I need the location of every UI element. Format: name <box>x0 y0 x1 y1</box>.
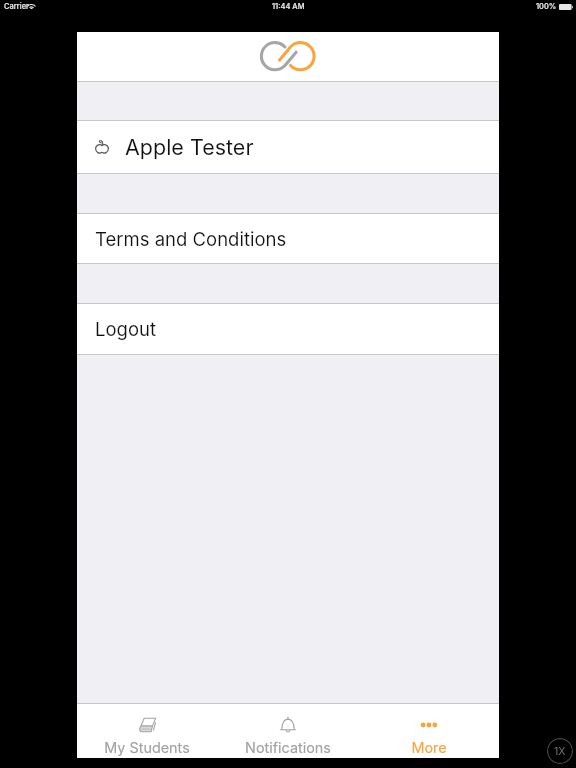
button[interactable]: More <box>358 704 499 758</box>
button[interactable]: My Students <box>77 704 217 758</box>
staticText: Apple Tester <box>125 134 254 160</box>
staticText: More <box>411 739 447 756</box>
button[interactable]: Terms and Conditions <box>77 214 499 263</box>
button[interactable]: Notifications <box>217 704 358 758</box>
staticText: Notifications <box>245 739 331 756</box>
staticText: Carrier <box>4 2 29 11</box>
button[interactable]: Apple Tester <box>77 121 499 173</box>
staticText: Terms and Conditions <box>95 228 287 250</box>
staticText: My Students <box>104 739 190 756</box>
button[interactable]: Scale 1X <box>547 738 573 764</box>
button[interactable]: Logout <box>77 304 499 354</box>
staticText: 1X <box>554 745 566 758</box>
staticText: 11:44 AM <box>272 2 305 11</box>
staticText: 100% <box>536 2 557 11</box>
staticText: Logout <box>95 318 156 340</box>
